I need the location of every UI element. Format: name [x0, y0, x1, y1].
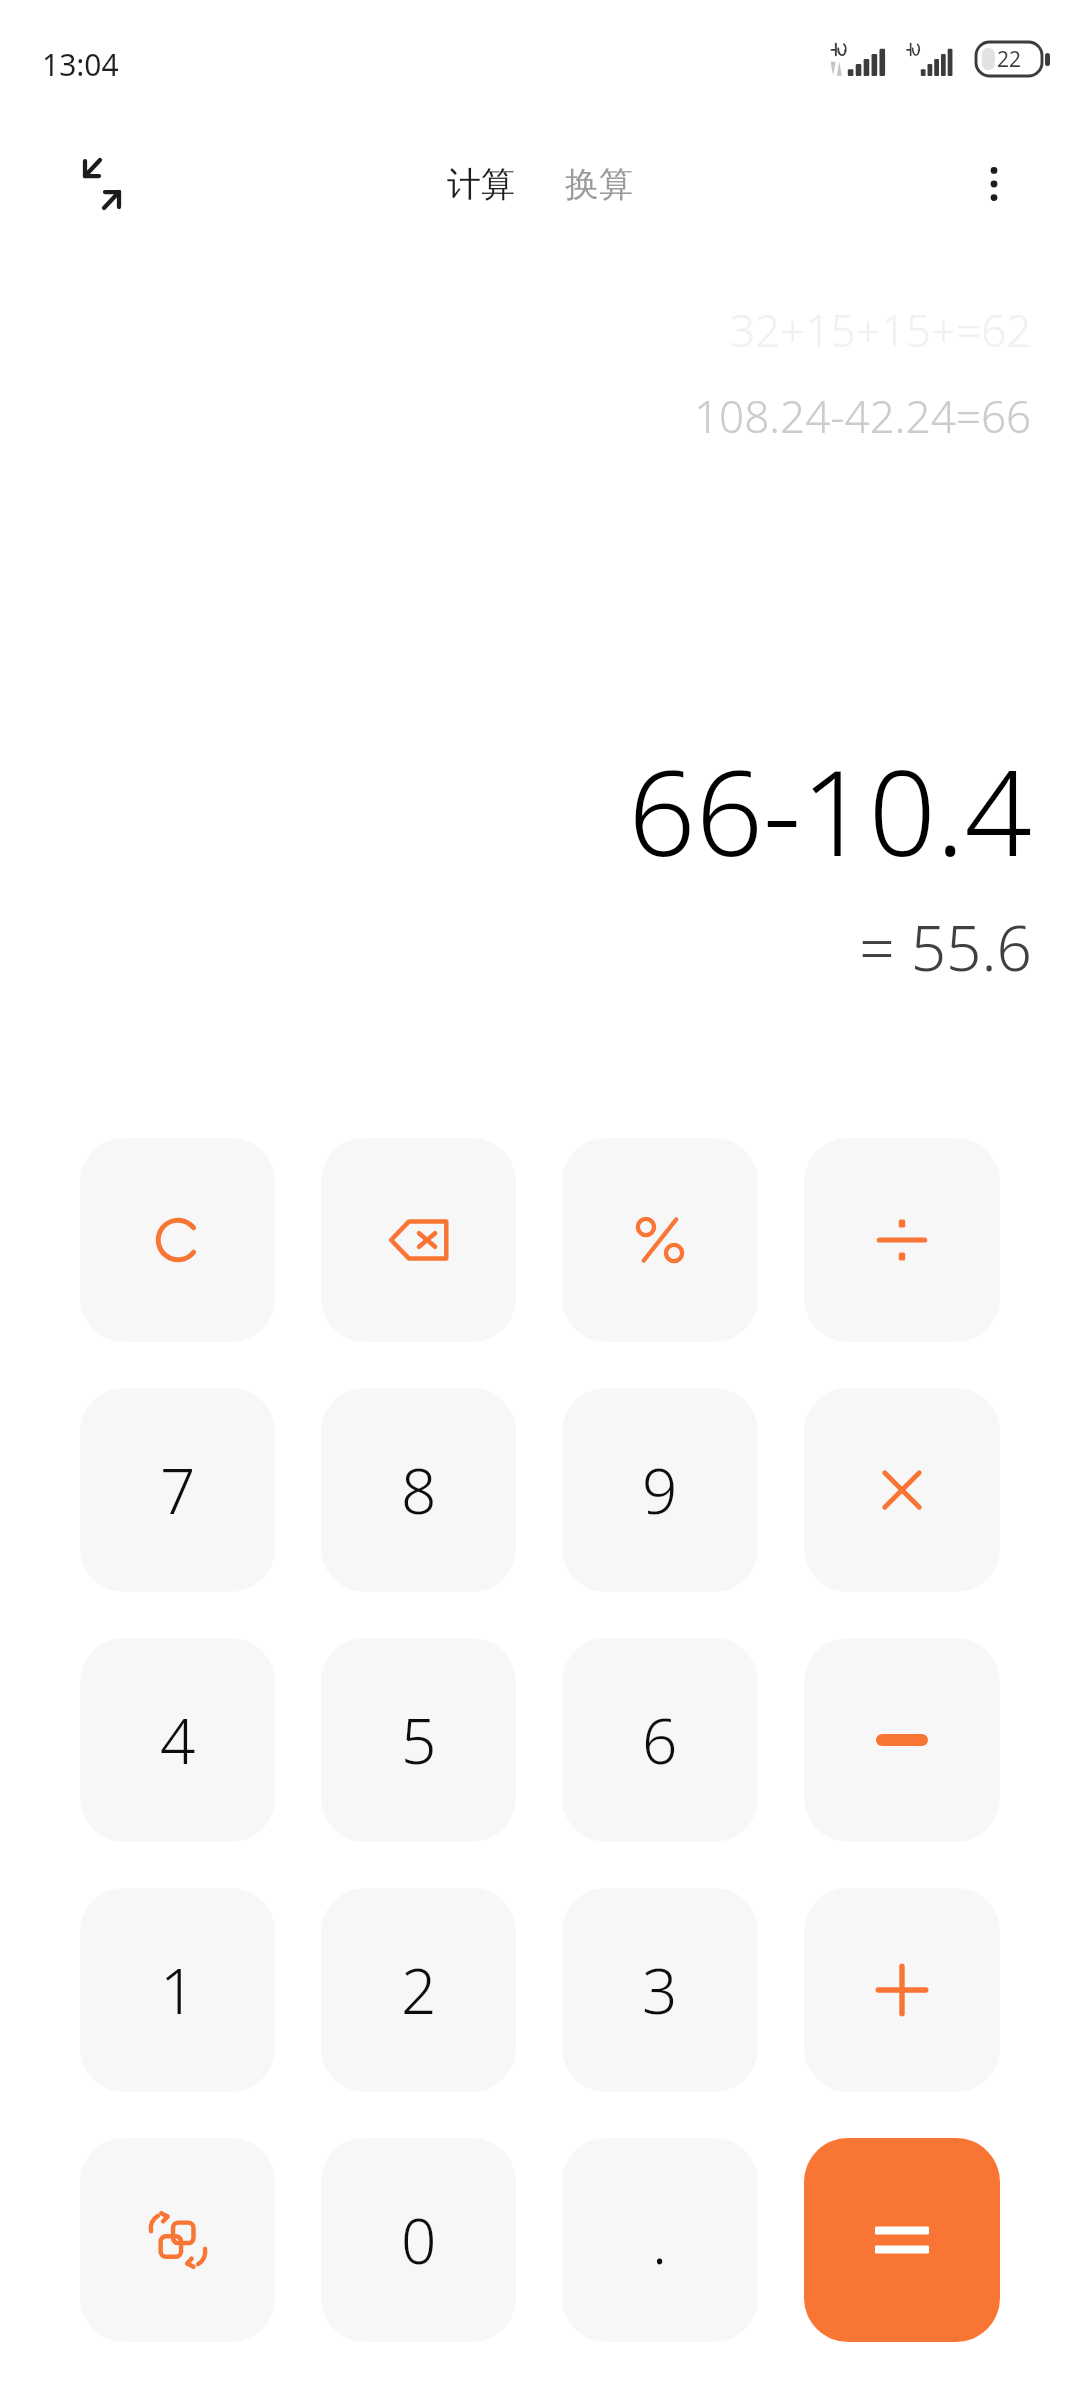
button[interactable]: 7: [80, 1388, 275, 1592]
button[interactable]: Clear: [80, 1138, 275, 1342]
staticText: 2: [401, 1948, 437, 2032]
staticText: 计算: [447, 163, 515, 206]
button[interactable]: 9: [562, 1388, 758, 1592]
staticText: 换算: [565, 163, 633, 206]
staticText: 9: [642, 1448, 678, 1532]
staticText: 6: [642, 1698, 678, 1782]
button[interactable]: Equals: [804, 2138, 1000, 2342]
staticText: 66-10.4: [628, 730, 1032, 891]
button[interactable]: 6: [562, 1638, 758, 1842]
staticText: 5: [401, 1698, 437, 1782]
button[interactable]: 5: [321, 1638, 516, 1842]
button[interactable]: More options: [956, 146, 1032, 222]
staticText: 7: [160, 1448, 196, 1532]
button[interactable]: 0: [321, 2138, 516, 2342]
button[interactable]: 3: [562, 1888, 758, 2092]
button[interactable]: 1: [80, 1888, 275, 2092]
staticText: 1: [160, 1948, 196, 2032]
button[interactable]: 2: [321, 1888, 516, 2092]
staticText: 8: [401, 1448, 437, 1532]
staticText: 3: [642, 1948, 678, 2032]
staticText: 13:04: [42, 44, 119, 85]
button[interactable]: Convert units: [80, 2138, 275, 2342]
button[interactable]: 换算: [553, 153, 645, 216]
button[interactable]: 8: [321, 1388, 516, 1592]
button[interactable]: Divide: [804, 1138, 1000, 1342]
button[interactable]: Backspace: [321, 1138, 516, 1342]
button[interactable]: Multiply: [804, 1388, 1000, 1592]
staticText: 32+15+15+=62: [730, 300, 1032, 360]
button[interactable]: Percent: [562, 1138, 758, 1342]
button[interactable]: .: [562, 2138, 758, 2342]
staticText: 22: [997, 45, 1022, 74]
staticText: 0: [401, 2198, 437, 2282]
button[interactable]: Collapse: [64, 146, 140, 222]
button[interactable]: 4: [80, 1638, 275, 1842]
staticText: 4: [160, 1698, 196, 1782]
staticText: .: [652, 2198, 668, 2282]
staticText: = 55.6: [859, 905, 1032, 989]
button[interactable]: Plus: [804, 1888, 1000, 2092]
staticText: 108.24-42.24=66: [694, 386, 1032, 446]
button[interactable]: 计算: [435, 153, 527, 216]
button[interactable]: Minus: [804, 1638, 1000, 1842]
